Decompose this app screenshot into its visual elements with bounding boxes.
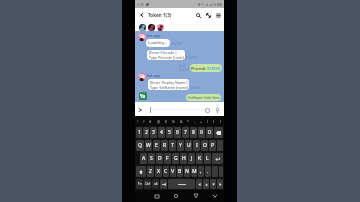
staticText: 1 [138,129,141,136]
button[interactable]: plain [217,140,223,151]
staticText: * [203,127,205,130]
staticText: G [174,155,178,162]
button[interactable]: Search [193,10,203,20]
staticText: W [146,142,151,149]
button[interactable]: B [177,166,183,177]
button[interactable]: J [188,153,195,164]
button[interactable]: V [170,166,176,177]
button[interactable]: Bot avatar [138,73,146,81]
button[interactable]: @ [157,119,161,124]
staticText: % [179,127,181,130]
button[interactable]: Member [148,24,155,31]
button[interactable]: / [220,119,222,124]
button[interactable]: Y [177,140,184,151]
button[interactable]: alt [152,179,159,189]
button[interactable]: F [164,153,171,164]
button[interactable]: ? [143,119,145,124]
button[interactable]: L [204,153,211,164]
button[interactable]: del [214,127,223,138]
button[interactable]: right [217,179,223,189]
button[interactable]: plain [219,166,223,177]
button[interactable]: ) [213,119,215,124]
button[interactable]: Home [169,190,183,202]
button[interactable]: 9 [198,127,205,138]
button[interactable]: Pincode [190,64,222,72]
button[interactable]: Commands [136,106,144,114]
button[interactable]: 3 [150,127,157,138]
button[interactable]: SetName Gala Vera [186,94,221,101]
button[interactable]: More options [213,10,223,20]
button[interactable]: E [153,140,160,151]
button[interactable]: + [200,119,202,124]
button[interactable]: Call [203,10,213,20]
button[interactable]: Ctrl [144,179,151,189]
button[interactable]: Tab [160,179,167,189]
staticText: 6 [176,129,179,136]
button[interactable]: ret [212,153,223,164]
button[interactable]: M [191,166,197,177]
button[interactable]: $ [165,119,167,124]
button[interactable]: Back [135,9,148,20]
button[interactable]: 1 [136,127,142,138]
button[interactable]: Your avatar [139,92,147,100]
button[interactable]: D [156,153,163,164]
button[interactable]: ( [207,119,209,124]
staticText: [Enter Pincode ] [149,50,177,55]
button[interactable]: 7 [182,127,189,138]
button[interactable]: left [196,179,202,189]
button[interactable]: S [148,153,155,164]
button[interactable]: ! [137,119,138,124]
button[interactable]: 8 [190,127,197,138]
button[interactable]: Recents [150,190,164,202]
button[interactable]: Loading... [146,39,170,47]
button[interactable]: [Enter Pincode ] [147,50,185,60]
staticText: R [163,142,167,149]
button[interactable]: # [149,119,152,124]
button[interactable]: 5 [166,127,173,138]
button[interactable]: N [184,166,190,177]
staticText: X [157,168,161,175]
button[interactable]: Member [157,24,164,31]
button[interactable]: A [140,153,147,164]
button[interactable]: G [172,153,179,164]
button[interactable] [212,166,218,177]
staticText: V [171,168,175,175]
button[interactable]: % [172,119,175,124]
button[interactable]: . [205,166,211,177]
button[interactable]: I [193,140,200,151]
button[interactable]: Space [168,179,195,189]
button[interactable]: R [161,140,168,151]
button[interactable]: X [155,166,162,177]
button[interactable]: * [187,119,189,124]
button[interactable]: 4 [158,127,165,138]
button[interactable]: Hide keyboard [208,190,222,202]
button[interactable]: W [145,140,152,151]
staticText: Y [179,142,182,149]
button[interactable]: 6 [174,127,181,138]
button[interactable]: K [196,153,203,164]
button[interactable]: , [198,166,204,177]
button[interactable]: Bot avatar [138,33,146,41]
button[interactable]: Q [136,140,144,151]
button[interactable]: Z [147,166,154,177]
button[interactable]: down [210,179,216,189]
button[interactable]: O [201,140,208,151]
button[interactable]: U [185,140,192,151]
button[interactable]: 2 [143,127,149,138]
button[interactable]: 0 [206,127,213,138]
button[interactable]: up [203,179,209,189]
button[interactable]: - [194,119,196,124]
button[interactable]: Fn [136,179,143,189]
staticText: 2 [145,129,148,136]
button[interactable]: Attach [213,106,221,114]
button[interactable]: & [180,119,183,124]
button[interactable]: H [180,153,187,164]
button[interactable]: Member [139,24,146,31]
button[interactable]: [Enter Display Name ] [148,79,189,90]
button[interactable]: Back [189,190,203,202]
button[interactable]: T [169,140,176,151]
button[interactable]: P [209,140,216,151]
button[interactable]: C [163,166,169,177]
button[interactable]: Emoji [203,106,211,114]
button[interactable]: shift [136,166,146,177]
